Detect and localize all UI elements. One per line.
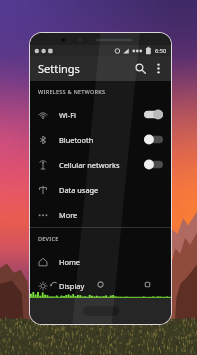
button[interactable]: Cellular networks bbox=[30, 152, 171, 177]
staticText: 6:50 bbox=[155, 47, 167, 55]
button[interactable]: Off bbox=[144, 159, 163, 170]
button[interactable]: On bbox=[144, 109, 163, 120]
button[interactable]: Off bbox=[144, 134, 163, 145]
staticText: WIRELESS & NETWORKS bbox=[38, 88, 106, 96]
button[interactable]: Display bbox=[30, 274, 171, 298]
button[interactable]: Bluetooth bbox=[30, 127, 171, 152]
button[interactable]: Home bbox=[30, 249, 171, 274]
button[interactable]: More bbox=[30, 202, 171, 227]
button[interactable]: Wi-Fi bbox=[30, 102, 171, 127]
staticText: DEVICE bbox=[38, 235, 59, 243]
staticText: More bbox=[59, 210, 78, 220]
button[interactable]: More options bbox=[151, 61, 166, 76]
staticText: Display bbox=[59, 281, 85, 291]
button[interactable]: Search bbox=[130, 58, 151, 79]
button[interactable]: Home bbox=[77, 277, 124, 292]
button[interactable]: Home button bbox=[83, 306, 119, 316]
staticText: Wi-Fi bbox=[59, 110, 76, 120]
button[interactable]: Recents bbox=[124, 277, 171, 292]
button[interactable]: Back bbox=[30, 277, 77, 292]
staticText: Cellular networks bbox=[59, 160, 120, 170]
staticText: Home bbox=[59, 257, 81, 267]
staticText: Data usage bbox=[59, 185, 99, 195]
staticText: Bluetooth bbox=[59, 135, 94, 145]
staticText: Settings bbox=[38, 61, 80, 76]
button[interactable]: Data usage bbox=[30, 177, 171, 202]
